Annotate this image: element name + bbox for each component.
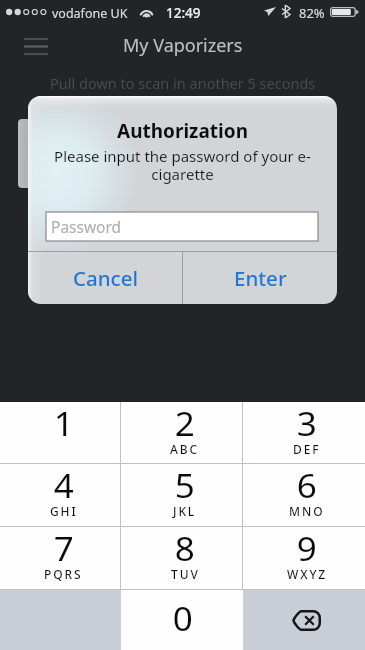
staticText: 5 [175,463,195,507]
staticText: Cancel [73,264,138,292]
button[interactable]: 2 [121,402,243,463]
button[interactable]: Password [46,212,318,241]
staticText: Authorization [28,118,337,144]
staticText: 9 [297,526,317,570]
staticText: 12:49 [166,4,201,22]
staticText: Password [51,216,122,237]
staticText: Enter [234,264,287,292]
button[interactable]: 8 [121,527,243,589]
staticText: 7 [54,526,74,570]
staticText: JKL [173,503,197,519]
staticText: MNO [289,503,325,519]
button[interactable]: 0 [121,590,243,650]
staticText: Please input the password of your e-ciga… [52,146,313,185]
staticText: 82% [299,4,325,22]
staticText: 0 [173,596,193,640]
button[interactable]: 5 [121,464,243,526]
staticText: vodafone UK [52,5,128,22]
staticText: GHI [50,503,78,519]
button[interactable]: Cancel [28,252,182,304]
button[interactable]: 4 [0,464,121,526]
button[interactable]: Menu [18,26,54,64]
button[interactable]: 7 [0,527,121,589]
staticText: 8 [175,526,195,570]
staticText: 4 [54,463,74,507]
staticText: Pull down to scan in another 5 seconds [50,73,316,93]
button[interactable]: 3 [243,402,365,463]
staticText: PQRS [44,566,83,582]
button[interactable]: 9 [243,527,365,589]
button[interactable]: 1 [0,402,121,463]
button[interactable]: 6 [243,464,365,526]
staticText: ABC [170,441,200,457]
staticText: TUV [171,566,200,582]
staticText: My Vaporizers [123,33,243,58]
staticText: 3 [297,401,317,445]
staticText: DEF [293,441,321,457]
staticText: 1 [54,401,74,445]
staticText: 6 [297,463,317,507]
staticText: 2 [175,401,195,445]
staticText: WXYZ [287,566,328,582]
button[interactable]: Enter [183,252,337,304]
button[interactable]: Backspace [243,590,365,650]
